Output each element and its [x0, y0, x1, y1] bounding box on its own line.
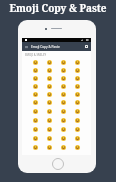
button[interactable]	[42, 90, 56, 98]
button[interactable]	[42, 107, 56, 116]
button[interactable]	[70, 74, 84, 82]
button[interactable]	[42, 143, 56, 152]
staticText: Emoji Copy & Paste	[9, 1, 107, 15]
button[interactable]	[42, 98, 56, 107]
button[interactable]	[42, 66, 56, 74]
button[interactable]	[28, 82, 42, 90]
button[interactable]	[28, 116, 42, 125]
button[interactable]	[56, 58, 70, 66]
button[interactable]	[70, 116, 84, 125]
button[interactable]	[42, 116, 56, 125]
button[interactable]	[28, 74, 42, 82]
button[interactable]: Save	[85, 45, 88, 48]
button[interactable]	[70, 98, 84, 107]
staticText: EMOJI & SMILEY	[25, 53, 47, 57]
button[interactable]: Menu	[24, 45, 28, 49]
button[interactable]	[56, 125, 70, 134]
button[interactable]	[70, 90, 84, 98]
button[interactable]	[28, 58, 42, 66]
button[interactable]	[28, 125, 42, 134]
button[interactable]	[42, 82, 56, 90]
button[interactable]	[28, 90, 42, 98]
button[interactable]	[70, 82, 84, 90]
button[interactable]	[56, 90, 70, 98]
button[interactable]	[28, 66, 42, 74]
button[interactable]	[56, 66, 70, 74]
button[interactable]	[70, 125, 84, 134]
button[interactable]	[70, 66, 84, 74]
button[interactable]	[56, 74, 70, 82]
staticText: Emoji Copy & Paste	[31, 45, 60, 49]
button[interactable]	[70, 58, 84, 66]
button[interactable]	[42, 125, 56, 134]
button[interactable]	[42, 58, 56, 66]
button[interactable]	[56, 143, 70, 152]
button[interactable]	[56, 116, 70, 125]
button[interactable]	[28, 143, 42, 152]
button[interactable]	[56, 98, 70, 107]
button[interactable]	[28, 107, 42, 116]
button[interactable]	[56, 107, 70, 116]
button[interactable]	[70, 134, 84, 143]
button[interactable]	[42, 134, 56, 143]
button[interactable]	[42, 74, 56, 82]
button[interactable]	[28, 134, 42, 143]
button[interactable]	[70, 143, 84, 152]
button[interactable]: Home	[52, 158, 64, 170]
button[interactable]	[56, 82, 70, 90]
button[interactable]	[56, 134, 70, 143]
button[interactable]	[70, 107, 84, 116]
button[interactable]	[28, 98, 42, 107]
